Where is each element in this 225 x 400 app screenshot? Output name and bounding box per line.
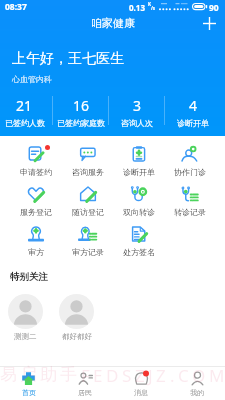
button[interactable]: Add — [198, 12, 220, 34]
staticText: 申请签约 — [20, 167, 52, 177]
button[interactable]: 处方签名 — [113, 223, 164, 263]
staticText: Z — [135, 364, 145, 387]
button[interactable]: 转诊记录 — [164, 183, 215, 223]
staticText: 08:37 — [5, 1, 27, 13]
button[interactable]: 服务登记 — [10, 183, 62, 223]
staticText: 0.13 — [129, 2, 145, 13]
staticText: 转诊记录 — [174, 207, 206, 217]
staticText: 都好都好 — [62, 332, 92, 341]
staticText: 咱家健康 — [91, 16, 135, 30]
staticText: 启 — [20, 364, 37, 385]
staticText: 上午好，王七医生 — [12, 50, 124, 68]
button[interactable]: 首页 — [0, 366, 57, 400]
button[interactable]: 诊断开单 — [113, 143, 164, 183]
staticText: 已签约家庭数 — [57, 118, 105, 128]
staticText: 消息 — [134, 388, 148, 397]
button[interactable]: 居民 — [57, 366, 113, 400]
staticText: 咨询人次 — [121, 118, 153, 128]
staticText: 诊断开单 — [177, 118, 209, 128]
button[interactable]: 消息 — [113, 366, 169, 400]
button[interactable]: 测测二 — [8, 294, 43, 341]
staticText: Z — [156, 364, 166, 387]
staticText: 特别关注 — [10, 271, 48, 283]
button[interactable]: 协作门诊 — [164, 143, 215, 183]
staticText: 易 — [0, 364, 17, 385]
staticText: 服务登记 — [20, 207, 52, 217]
button[interactable]: 随访登记 — [62, 183, 113, 223]
staticText: 我的 — [190, 388, 204, 397]
button[interactable]: 都好都好 — [59, 294, 94, 341]
staticText: E — [93, 364, 103, 387]
button[interactable]: 咨询服务 — [62, 143, 113, 183]
staticText: 已签约人数 — [5, 118, 45, 128]
staticText: /s — [151, 5, 156, 11]
staticText: 审方记录 — [72, 247, 104, 257]
staticText: . — [170, 364, 175, 387]
staticText: 审方 — [28, 247, 44, 257]
staticText: K — [148, 1, 151, 7]
staticText: 处方签名 — [123, 247, 155, 257]
button[interactable]: 我的 — [169, 366, 225, 400]
staticText: 助 — [40, 364, 57, 385]
button[interactable]: 审方记录 — [62, 223, 113, 263]
staticText: 21 — [16, 96, 33, 115]
staticText: M — [209, 364, 225, 387]
staticText: 4 — [189, 96, 198, 115]
staticText: D — [106, 364, 119, 387]
staticText: 首页 — [22, 388, 36, 397]
staticText: 3 — [133, 96, 142, 115]
staticText: O — [192, 364, 206, 387]
staticText: 随访登记 — [72, 207, 104, 217]
staticText: F — [81, 364, 90, 387]
staticText: 16 — [73, 96, 90, 115]
button[interactable]: 申请签约 — [10, 143, 62, 183]
staticText: 诊断开单 — [123, 167, 155, 177]
staticText: 居民 — [78, 388, 92, 397]
staticText: S — [122, 364, 132, 387]
staticText: 协作门诊 — [174, 167, 206, 177]
staticText: 90 — [209, 2, 219, 14]
staticText: 手 — [60, 364, 77, 385]
staticText: J — [148, 364, 153, 387]
staticText: C — [178, 364, 189, 387]
staticText: 心血管内科 — [12, 74, 52, 84]
staticText: 咨询服务 — [72, 167, 104, 177]
button[interactable]: 双向转诊 — [113, 183, 164, 223]
button[interactable]: 审方 — [10, 223, 62, 263]
staticText: 测测二 — [14, 332, 37, 341]
staticText: 双向转诊 — [123, 207, 155, 217]
